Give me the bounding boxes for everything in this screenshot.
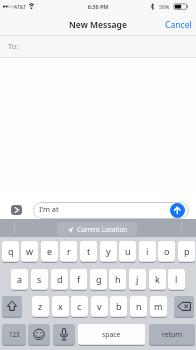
staticText: g [96, 273, 102, 285]
staticText: q [8, 245, 14, 257]
button[interactable] [33, 202, 189, 219]
button[interactable]: m [150, 296, 167, 318]
button[interactable]: o [158, 241, 175, 263]
button[interactable]: y [100, 241, 117, 263]
staticText: a [17, 273, 23, 285]
staticText: w [26, 245, 34, 257]
staticText: y [106, 245, 111, 257]
button[interactable]: n [130, 296, 147, 318]
staticText: Cancel [165, 19, 192, 31]
button[interactable]: c [71, 296, 88, 318]
button[interactable]: 123 [2, 324, 26, 346]
staticText: 56% [159, 3, 170, 10]
button[interactable]: i [139, 241, 156, 263]
button[interactable]: Cancel [158, 18, 194, 32]
staticText: space [102, 330, 121, 339]
staticText: s [37, 273, 42, 285]
button[interactable] [2, 296, 22, 318]
staticText: e [47, 245, 53, 257]
button[interactable]: z [32, 296, 49, 318]
staticText: r [67, 245, 71, 257]
staticText: To: [8, 41, 19, 52]
staticText: p [184, 245, 190, 257]
button[interactable]: j [129, 269, 146, 291]
button[interactable]: r [60, 241, 77, 263]
button[interactable]: f [70, 269, 87, 291]
button[interactable]: l [168, 269, 185, 291]
staticText: k [155, 273, 160, 285]
staticText: AT&T [14, 3, 27, 10]
staticText: 123 [9, 330, 20, 338]
staticText: l [175, 273, 178, 285]
staticText: c [77, 300, 82, 312]
button[interactable] [0, 36, 196, 58]
button[interactable]: w [21, 241, 38, 263]
staticText: o [164, 245, 170, 257]
staticText: n [136, 300, 142, 312]
button[interactable] [53, 324, 75, 346]
button[interactable] [174, 296, 194, 318]
staticText: 6:36 PM [0, 3, 196, 10]
button[interactable] [28, 324, 50, 346]
button[interactable]: b [110, 296, 127, 318]
button[interactable]: p [178, 241, 195, 263]
staticText: m [154, 300, 163, 312]
staticText: j [136, 273, 139, 285]
staticText: return [162, 330, 183, 339]
staticText: b [116, 300, 122, 312]
button[interactable] [11, 205, 22, 215]
staticText: x [58, 300, 63, 312]
button[interactable]: e [41, 241, 58, 263]
staticText: h [115, 273, 121, 285]
staticText: z [38, 300, 43, 312]
button[interactable]: v [91, 296, 108, 318]
button[interactable]: s [31, 269, 48, 291]
button[interactable]: k [149, 269, 166, 291]
staticText: u [125, 245, 131, 257]
staticText: Current Location [77, 225, 128, 234]
button[interactable]: t [80, 241, 97, 263]
button[interactable]: space [78, 324, 145, 346]
staticText: I'm at [39, 204, 59, 214]
staticText: d [57, 273, 63, 285]
button[interactable]: x [52, 296, 69, 318]
staticText: t [87, 245, 91, 257]
button[interactable]: Current Location [57, 222, 137, 236]
button[interactable] [170, 203, 185, 218]
button[interactable]: q [2, 241, 19, 263]
button[interactable]: d [51, 269, 68, 291]
button[interactable]: h [109, 269, 126, 291]
button[interactable]: return [149, 324, 195, 346]
staticText: v [97, 300, 102, 312]
button[interactable]: g [90, 269, 107, 291]
staticText: f [77, 273, 81, 285]
staticText: i [146, 245, 149, 257]
button[interactable]: u [119, 241, 136, 263]
button[interactable]: a [11, 269, 28, 291]
staticText: New Message [0, 19, 196, 31]
